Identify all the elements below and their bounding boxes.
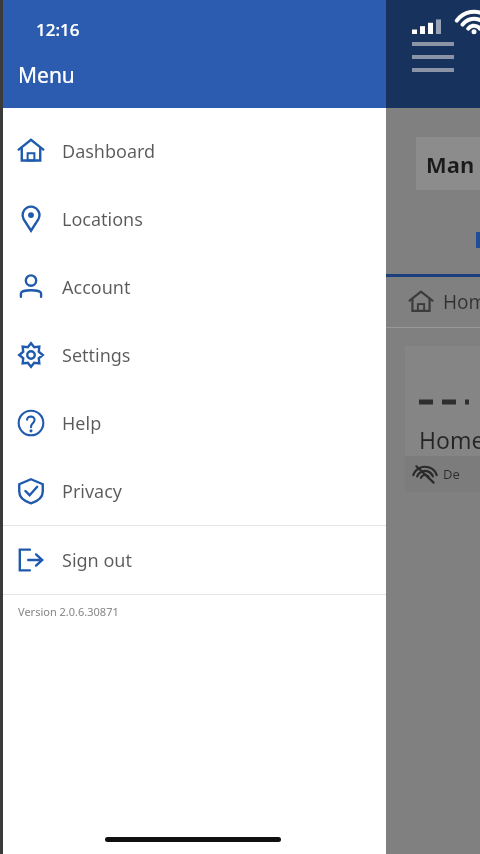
button[interactable]: Dashboard <box>0 117 386 185</box>
button[interactable]: Locations <box>0 185 386 253</box>
staticText: Dashboard <box>62 139 156 164</box>
button[interactable]: Account <box>0 253 386 321</box>
staticText: Account <box>62 275 131 300</box>
staticText: Home <box>419 424 480 455</box>
staticText: Man <box>426 149 475 179</box>
button[interactable]: Sign out <box>0 526 386 594</box>
staticText: 12:16 <box>36 18 80 41</box>
staticText: Locations <box>62 207 143 232</box>
button[interactable]: Settings <box>0 321 386 389</box>
staticText: Settings <box>62 343 131 368</box>
staticText: Menu <box>18 61 75 90</box>
staticText: Version 2.0.6.30871 <box>18 604 119 619</box>
staticText: Privacy <box>62 479 123 504</box>
staticText: De <box>443 465 460 483</box>
button[interactable]: Close menu <box>409 33 457 81</box>
button[interactable]: Help <box>0 389 386 457</box>
staticText: Hom <box>443 289 480 315</box>
staticText: Sign out <box>62 548 132 573</box>
staticText: Help <box>62 411 102 436</box>
button[interactable]: Privacy <box>0 457 386 525</box>
